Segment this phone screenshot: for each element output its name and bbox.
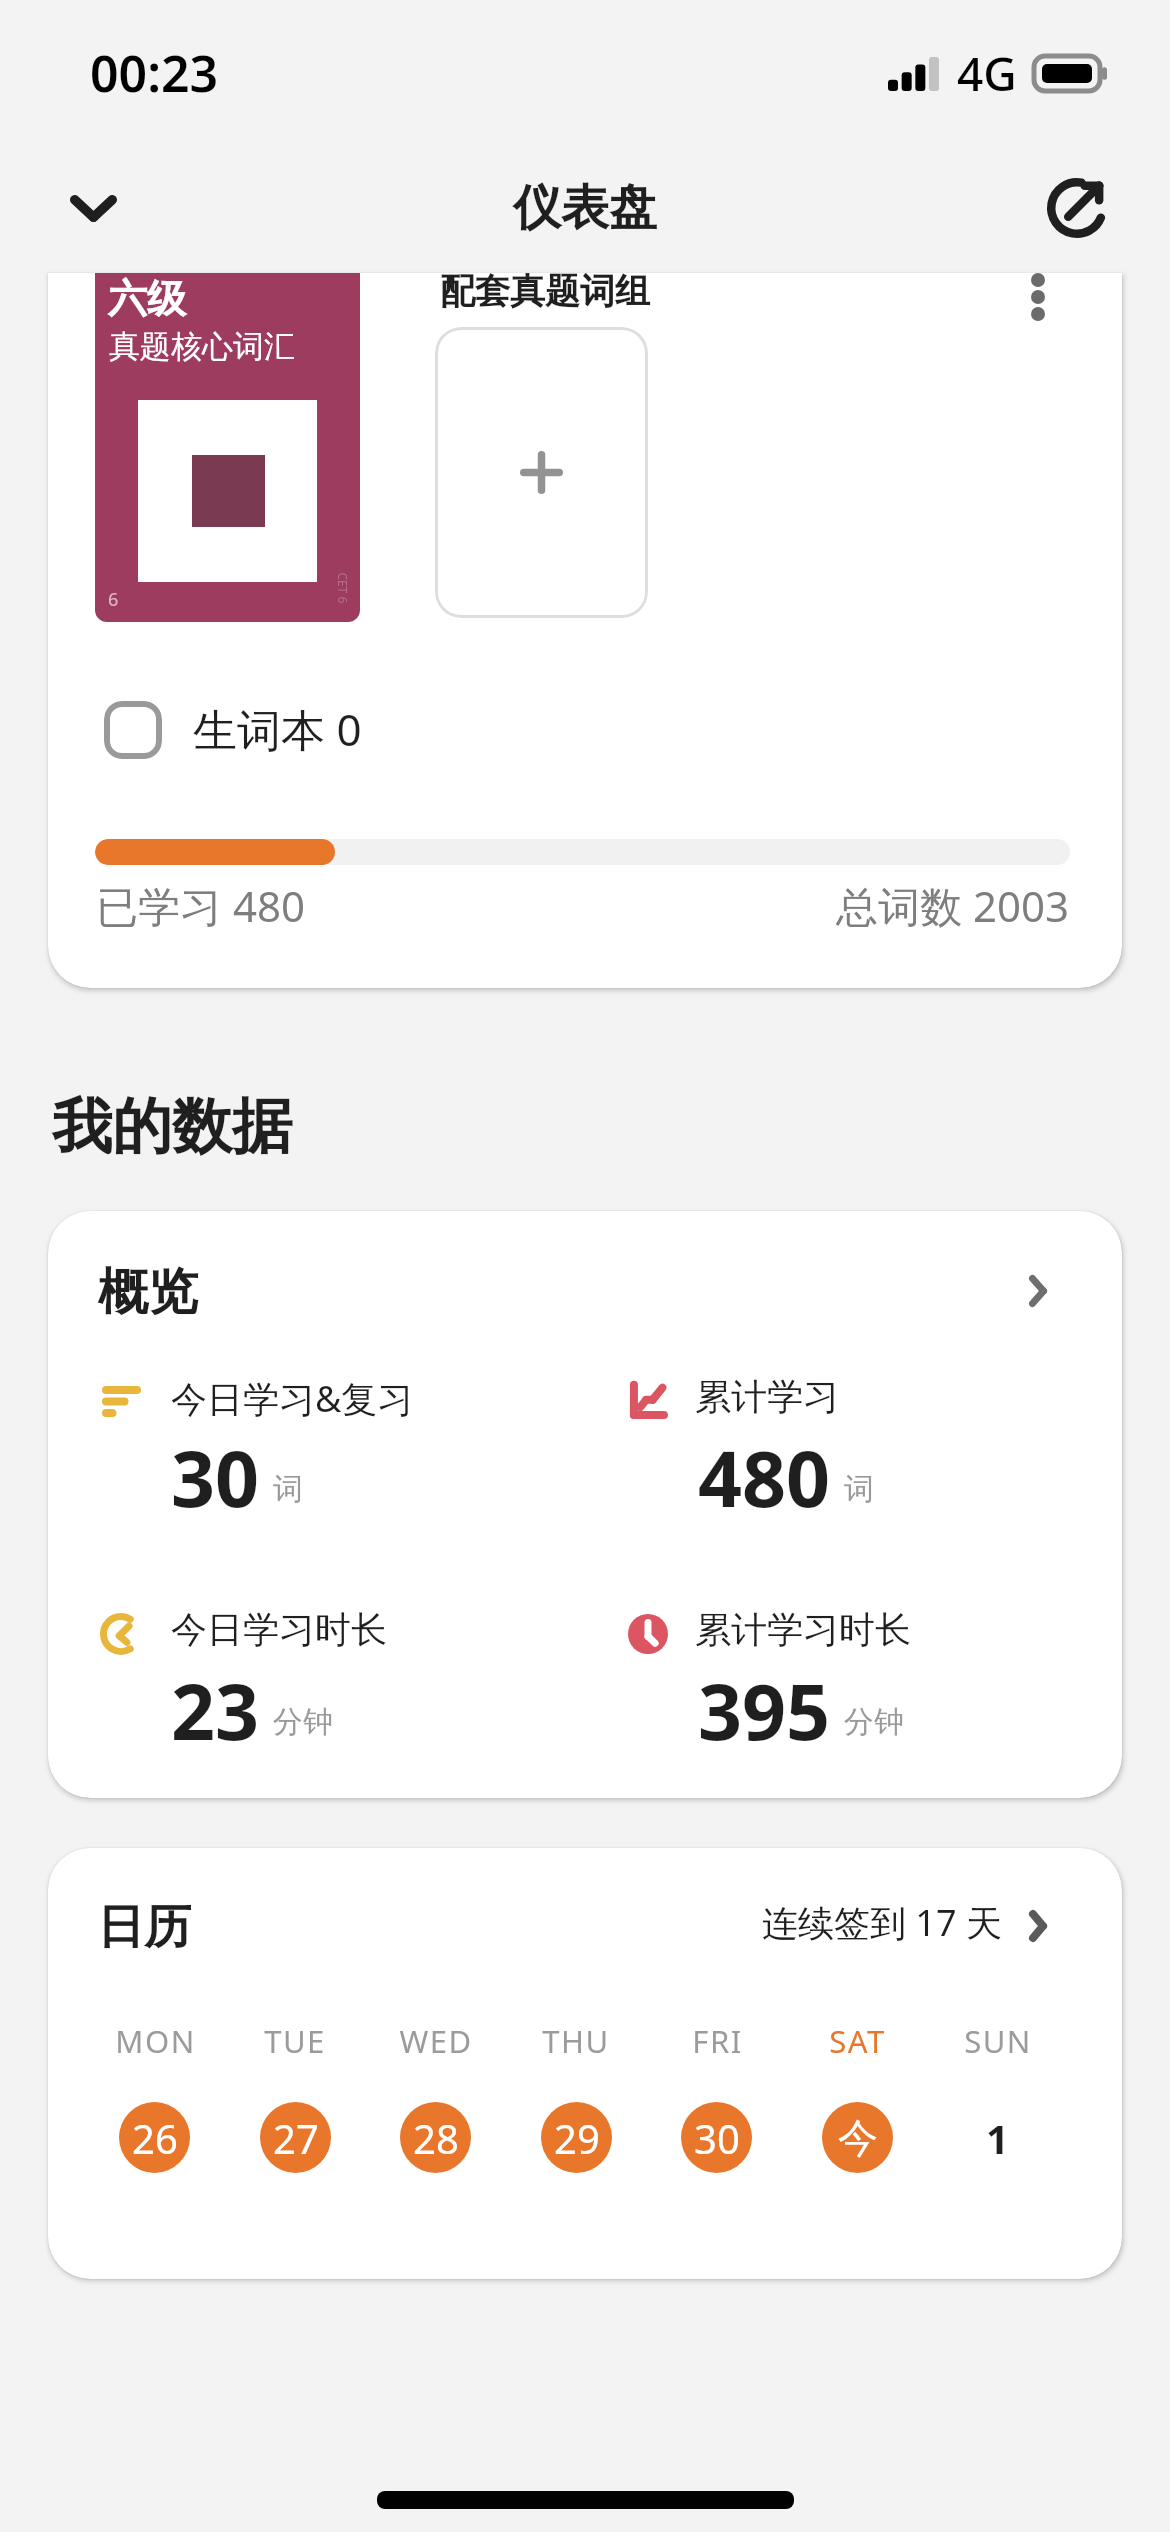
staticText: CET 6 — [334, 572, 350, 603]
staticText: 已学习 480 — [96, 877, 305, 934]
staticText: 6 — [108, 587, 119, 612]
button[interactable]: 概览 — [78, 1239, 1092, 1339]
staticText: 29 — [554, 2111, 600, 2165]
staticText: MON — [115, 2020, 196, 2062]
staticText: 生词本 0 — [193, 699, 362, 759]
staticText: 480 — [698, 1425, 831, 1530]
staticText: 395 — [698, 1658, 831, 1763]
staticText: 28 — [413, 2111, 459, 2165]
staticText: 今 — [838, 2113, 878, 2163]
button[interactable]: 连续签到 17 天 — [738, 1876, 1092, 1972]
button[interactable]: Collapse — [18, 133, 168, 283]
staticText: 累计学习时长 — [695, 1607, 911, 1652]
button[interactable]: 26 — [119, 2102, 190, 2173]
staticText: THU — [542, 2020, 610, 2062]
staticText: 六级 — [108, 274, 186, 323]
staticText: 累计学习 — [695, 1374, 839, 1419]
staticText: 仪表盘 — [513, 178, 657, 238]
staticText: 分钟 — [273, 1703, 333, 1741]
staticText: 词 — [844, 1470, 874, 1508]
staticText: 00:23 — [90, 39, 219, 107]
staticText: 23 — [171, 1658, 260, 1763]
staticText: 30 — [171, 1425, 260, 1530]
staticText: 1 — [986, 2111, 1009, 2165]
staticText: 4G — [957, 42, 1017, 105]
staticText: 今日学习&复习 — [171, 1374, 414, 1423]
staticText: 配套真题词组 — [440, 273, 650, 313]
button[interactable]: 27 — [260, 2102, 331, 2173]
button[interactable]: More options — [978, 273, 1098, 357]
button[interactable]: 日历 — [48, 1848, 1122, 2279]
button[interactable]: Word book — [104, 701, 162, 759]
staticText: 总词数 2003 — [836, 877, 1070, 934]
staticText: TUE — [264, 2020, 326, 2062]
staticText: 今日学习时长 — [171, 1607, 387, 1652]
button[interactable]: 28 — [400, 2102, 471, 2173]
staticText: FRI — [692, 2020, 743, 2062]
staticText: 概览 — [98, 1261, 198, 1324]
staticText: WED — [399, 2020, 473, 2062]
button[interactable]: Share — [1002, 133, 1152, 283]
staticText: 26 — [132, 2111, 178, 2165]
staticText: 27 — [273, 2111, 319, 2165]
staticText: SAT — [829, 2020, 886, 2062]
staticText: 词 — [273, 1470, 303, 1508]
staticText: 我的数据 — [52, 1089, 292, 1165]
button[interactable]: 30 — [681, 2102, 752, 2173]
staticText: SUN — [964, 2020, 1032, 2062]
staticText: 日历 — [97, 1898, 191, 1957]
button[interactable]: 六级 — [48, 273, 1122, 988]
button[interactable]: Add word group — [435, 327, 648, 618]
button[interactable]: 概览 — [48, 1211, 1122, 1798]
staticText: 30 — [694, 2111, 740, 2165]
staticText: 分钟 — [844, 1703, 904, 1741]
staticText: 真题核心词汇 — [109, 327, 295, 366]
staticText: 连续签到 17 天 — [762, 1898, 1002, 1947]
button[interactable]: 今 — [822, 2102, 893, 2173]
button[interactable]: 29 — [541, 2102, 612, 2173]
button[interactable]: 1 — [962, 2102, 1033, 2173]
